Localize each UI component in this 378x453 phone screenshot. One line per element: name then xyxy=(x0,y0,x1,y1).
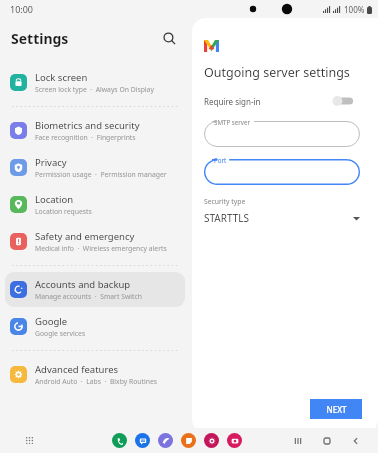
staticText: 100% xyxy=(344,4,365,15)
staticText: NEXT xyxy=(326,404,347,415)
button[interactable]: Internet xyxy=(158,433,173,448)
staticText: Outgoing server settings xyxy=(204,64,350,81)
button[interactable]: Notes xyxy=(181,433,196,448)
button[interactable]: Lock screen xyxy=(5,65,185,100)
button[interactable]: Require sign-in xyxy=(204,95,368,107)
button[interactable]: Privacy xyxy=(5,150,185,185)
staticText: Face recognition · Fingerprints xyxy=(35,133,136,142)
staticText: Manage accounts · Smart Switch xyxy=(35,292,142,301)
staticText: Biometrics and security xyxy=(35,119,140,132)
button[interactable]: Google xyxy=(5,309,185,344)
staticText: Security type xyxy=(204,197,246,206)
staticText: STARTTLS xyxy=(204,211,250,225)
staticText: Location requests xyxy=(35,207,92,216)
button[interactable]: Safety and emergency xyxy=(5,224,185,259)
staticText: Port xyxy=(214,156,227,164)
button[interactable]: Messages xyxy=(135,433,150,448)
button[interactable]: SMTP server xyxy=(204,121,360,147)
button[interactable]: Location xyxy=(5,187,185,222)
other: Require sign-in toggle xyxy=(332,95,354,107)
staticText: Google services xyxy=(35,329,86,338)
staticText: Safety and emergency xyxy=(35,230,135,243)
button[interactable]: Recents xyxy=(290,433,306,449)
button[interactable]: Apps xyxy=(22,433,38,449)
button[interactable]: Store xyxy=(204,433,219,448)
button[interactable]: STARTTLS xyxy=(204,211,360,225)
other: Expand security type xyxy=(353,215,360,222)
staticText: Advanced features xyxy=(35,363,119,376)
button[interactable]: Search settings xyxy=(158,27,180,49)
staticText: Privacy xyxy=(35,156,67,169)
button[interactable]: Home xyxy=(319,433,335,449)
staticText: Medical info · Wireless emergency alerts xyxy=(35,244,167,253)
staticText: Screen lock type · Always On Display xyxy=(35,85,154,94)
staticText: Settings xyxy=(11,29,69,48)
button[interactable]: NEXT xyxy=(310,399,362,419)
button[interactable]: Back xyxy=(348,433,364,449)
button[interactable]: Accounts and backup xyxy=(5,272,185,307)
button[interactable]: Phone xyxy=(112,433,127,448)
button[interactable]: Port xyxy=(204,159,360,185)
button[interactable]: Biometrics and security xyxy=(5,113,185,148)
staticText: Android Auto · Labs · Bixby Routines xyxy=(35,377,157,386)
staticText: Permission usage · Permission manager xyxy=(35,170,167,179)
staticText: Lock screen xyxy=(35,71,88,84)
button[interactable]: Camera xyxy=(227,433,242,448)
staticText: Require sign-in xyxy=(204,96,261,107)
button[interactable]: Advanced features xyxy=(5,357,185,392)
staticText: 10:00 xyxy=(10,3,34,15)
staticText: Accounts and backup xyxy=(35,278,131,291)
staticText: Location xyxy=(35,193,74,206)
staticText: SMTP server xyxy=(214,118,250,126)
staticText: Google xyxy=(35,315,68,328)
